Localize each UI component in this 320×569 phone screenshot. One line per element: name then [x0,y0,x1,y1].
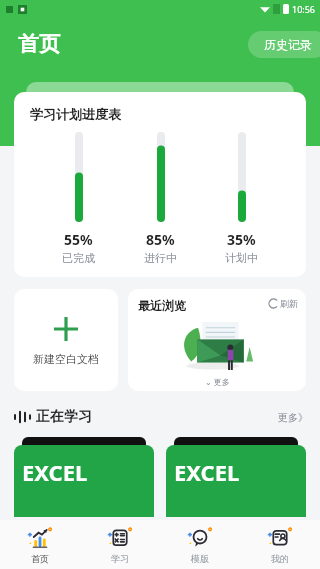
staticText: 正在学习 [36,408,92,426]
button[interactable]: 刷新 [269,298,298,309]
button[interactable]: EXCEL [14,437,154,517]
staticText: 35% [227,230,256,249]
button[interactable]: EXCEL [166,437,306,517]
staticText: 首页 [31,553,49,564]
staticText: 10:56 [292,3,316,15]
staticText: 进行中 [144,251,177,265]
staticText: 新建空白文档 [33,352,99,366]
staticText: 学习计划进度表 [30,106,121,122]
button[interactable]: 首页 [0,520,80,569]
staticText: 计划中 [225,251,258,265]
button[interactable]: 学习计划进度表 [14,92,306,277]
button[interactable]: 更多》 [278,411,308,424]
staticText: EXCEL [174,457,240,487]
staticText: 最近浏览 [138,298,186,313]
staticText: 历史记录 [264,37,312,52]
staticText: 模版 [191,553,209,564]
staticText: 55% [64,230,93,249]
button[interactable]: 我的 [240,520,320,569]
staticText: 首页 [18,31,60,57]
staticText: 刷新 [280,298,298,309]
button[interactable]: 学习 [80,520,160,569]
button[interactable]: 历史记录 [248,31,320,58]
button[interactable]: 新建空白文档 [14,289,118,391]
staticText: ⌄ 更多 [205,376,230,387]
staticText: 更多》 [278,411,308,424]
staticText: 85% [146,230,175,249]
button[interactable]: 最近浏览 [128,289,306,391]
button[interactable]: 模版 [160,520,240,569]
staticText: 学习 [111,553,129,564]
staticText: 已完成 [62,251,95,265]
staticText: EXCEL [22,457,88,487]
staticText: 我的 [271,553,289,564]
